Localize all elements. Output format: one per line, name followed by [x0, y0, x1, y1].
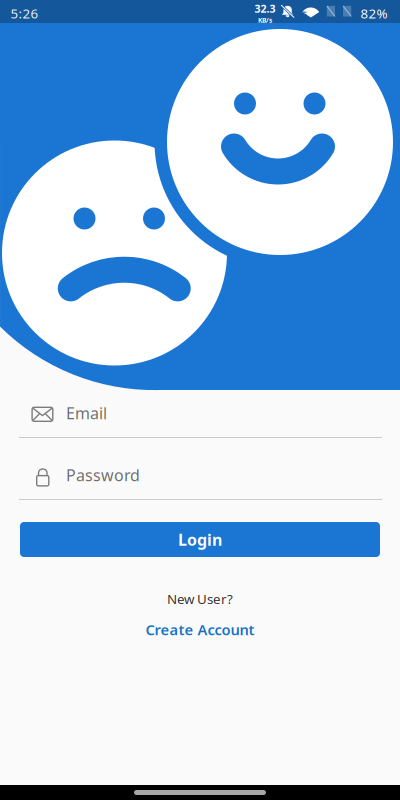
staticText: Login — [178, 529, 222, 550]
staticText: KB/s — [258, 16, 272, 25]
staticText: Email — [66, 402, 107, 424]
staticText: New User? — [167, 590, 233, 608]
staticText: 32.3 — [254, 1, 275, 16]
button[interactable]: Login — [20, 522, 380, 557]
staticText: 82% — [360, 4, 387, 22]
button[interactable]: Create Account — [133, 616, 266, 643]
staticText: Create Account — [145, 620, 254, 639]
staticText: 5:26 — [11, 4, 39, 22]
staticText: Password — [66, 464, 140, 486]
